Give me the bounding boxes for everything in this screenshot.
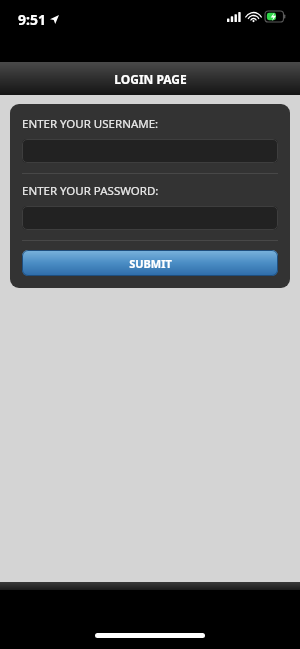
button[interactable]: SUBMIT — [22, 250, 278, 276]
staticText: ENTER YOUR PASSWORD: — [22, 183, 159, 199]
staticText: ENTER YOUR USERNAME: — [22, 116, 159, 132]
button[interactable] — [22, 139, 278, 163]
staticText: SUBMIT — [129, 256, 172, 271]
staticText: LOGIN PAGE — [114, 71, 187, 87]
button[interactable] — [22, 206, 278, 230]
staticText: 9:51 — [18, 10, 46, 29]
